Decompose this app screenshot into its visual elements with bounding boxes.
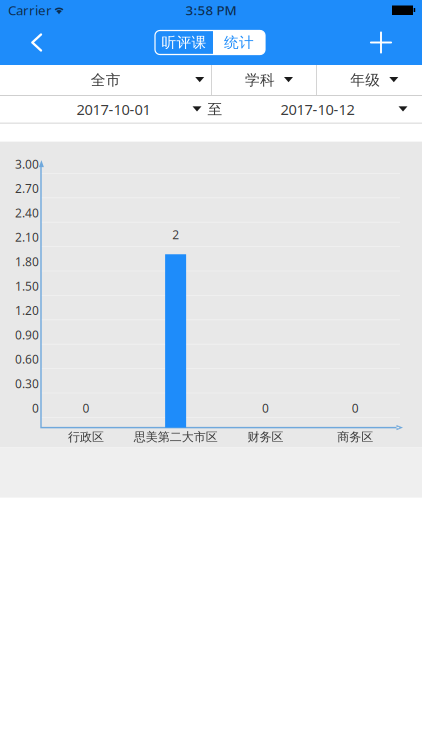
staticText: 0	[262, 400, 269, 416]
staticText: 统计	[224, 33, 254, 51]
staticText: 听评课	[161, 33, 206, 51]
staticText: 0	[32, 400, 39, 416]
button[interactable]: 2017-10-12	[222, 96, 412, 123]
button[interactable]: 听评课	[155, 30, 213, 54]
staticText: 至	[207, 100, 222, 118]
staticText: 3:58 PM	[185, 1, 236, 19]
staticText: 2017-10-01	[76, 100, 150, 119]
button[interactable]: Add	[364, 20, 422, 65]
staticText: 1.80	[15, 254, 39, 269]
staticText: 0.30	[15, 376, 39, 391]
staticText: 0.90	[15, 327, 39, 343]
button[interactable]: 年级	[317, 65, 422, 95]
button[interactable]: 学科	[212, 65, 316, 95]
staticText: 0	[82, 400, 89, 416]
staticText: 财务区	[247, 430, 283, 444]
staticText: 行政区	[68, 430, 104, 444]
staticText: 0.60	[15, 351, 39, 367]
staticText: 2.70	[15, 180, 39, 196]
staticText: 1.20	[15, 302, 39, 318]
button[interactable]: 统计	[213, 30, 265, 54]
staticText: 2	[172, 227, 179, 243]
staticText: 2.10	[15, 229, 39, 245]
staticText: 学科	[245, 71, 275, 89]
staticText: 2017-10-12	[280, 100, 354, 119]
staticText: Carrier	[8, 1, 52, 19]
button[interactable]: 2017-10-01	[9, 96, 207, 123]
staticText: 2.40	[15, 205, 39, 221]
staticText: 3.00	[15, 156, 39, 172]
staticText: 1.50	[15, 278, 39, 294]
staticText: 思美第二大市区	[134, 430, 218, 444]
button[interactable]: 全市	[0, 65, 211, 95]
staticText: 年级	[350, 71, 380, 89]
staticText: 全市	[91, 71, 121, 89]
staticText: 0	[352, 400, 359, 416]
staticText: 商务区	[337, 430, 373, 444]
button[interactable]: Back	[0, 20, 56, 65]
